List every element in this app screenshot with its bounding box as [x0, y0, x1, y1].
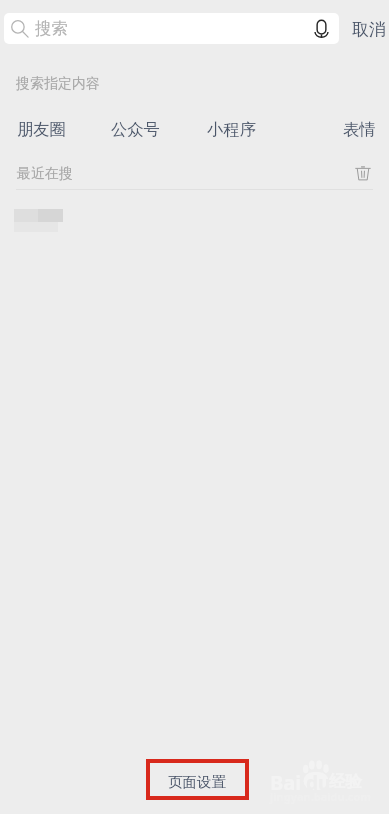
staticText: 表情	[343, 119, 376, 139]
button[interactable]: 公众号	[110, 117, 161, 141]
button[interactable]: 搜索	[4, 13, 339, 44]
staticText: 取消	[352, 19, 386, 40]
staticText: 朋友圈	[17, 119, 66, 139]
button[interactable]: 页面设置	[146, 759, 249, 800]
button[interactable]: 表情	[342, 117, 377, 141]
button[interactable]: 朋友圈	[16, 117, 67, 141]
button[interactable]: 小程序	[206, 117, 257, 141]
staticText: 小程序	[207, 119, 256, 139]
button[interactable]: Voice search	[310, 17, 332, 39]
button[interactable]: 取消	[347, 13, 389, 44]
staticText: 页面设置	[168, 773, 226, 791]
staticText: 公众号	[111, 119, 160, 139]
button[interactable]: Clear recent searches	[350, 160, 375, 185]
staticText: 搜索	[35, 18, 68, 39]
staticText: 搜索指定内容	[16, 75, 100, 93]
button[interactable]	[0, 196, 389, 242]
staticText: 最近在搜	[17, 165, 73, 183]
